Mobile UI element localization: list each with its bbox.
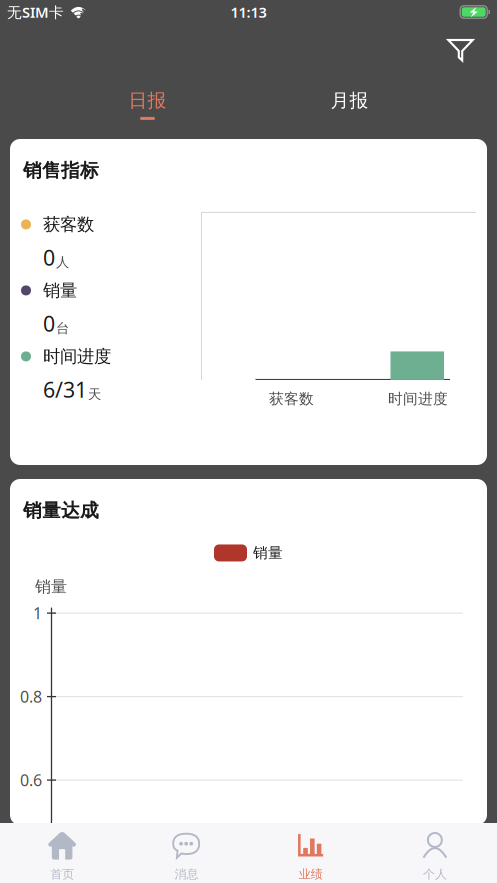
button[interactable]: 消息 <box>124 823 248 883</box>
button[interactable]: Filter <box>447 24 497 67</box>
staticText: 销量 <box>253 544 283 562</box>
staticText: 获客数 <box>43 214 94 235</box>
staticText: 台 <box>56 320 69 337</box>
staticText: 获客数 <box>269 390 314 408</box>
staticText: 人 <box>56 254 69 271</box>
staticText: 销量 <box>43 280 77 301</box>
staticText: 销售指标 <box>23 159 99 182</box>
staticText: 时间进度 <box>388 390 448 408</box>
staticText: 个人 <box>423 867 447 882</box>
staticText: 首页 <box>50 867 74 882</box>
staticText: 0 <box>43 309 55 338</box>
button[interactable]: 日报 <box>87 89 207 121</box>
staticText: 月报 <box>330 89 368 112</box>
button[interactable]: 业绩 <box>248 823 373 883</box>
staticText: 天 <box>88 386 101 403</box>
staticText: 消息 <box>174 867 198 882</box>
staticText: 日报 <box>128 89 166 112</box>
staticText: 业绩 <box>299 867 323 882</box>
staticText: 时间进度 <box>43 346 111 367</box>
staticText: 销量 <box>35 577 67 597</box>
button[interactable]: 月报 <box>289 89 409 121</box>
staticText: 0.8 <box>20 686 42 707</box>
staticText: 无SIM卡 <box>7 2 64 22</box>
staticText: 1 <box>33 602 42 624</box>
button[interactable]: 个人 <box>373 823 497 883</box>
staticText: 销量达成 <box>23 499 99 522</box>
staticText: 6/31 <box>43 375 87 404</box>
staticText: 0 <box>43 243 55 272</box>
button[interactable]: 首页 <box>0 823 124 883</box>
staticText: 11:13 <box>230 2 266 22</box>
staticText: 0.6 <box>20 769 42 791</box>
